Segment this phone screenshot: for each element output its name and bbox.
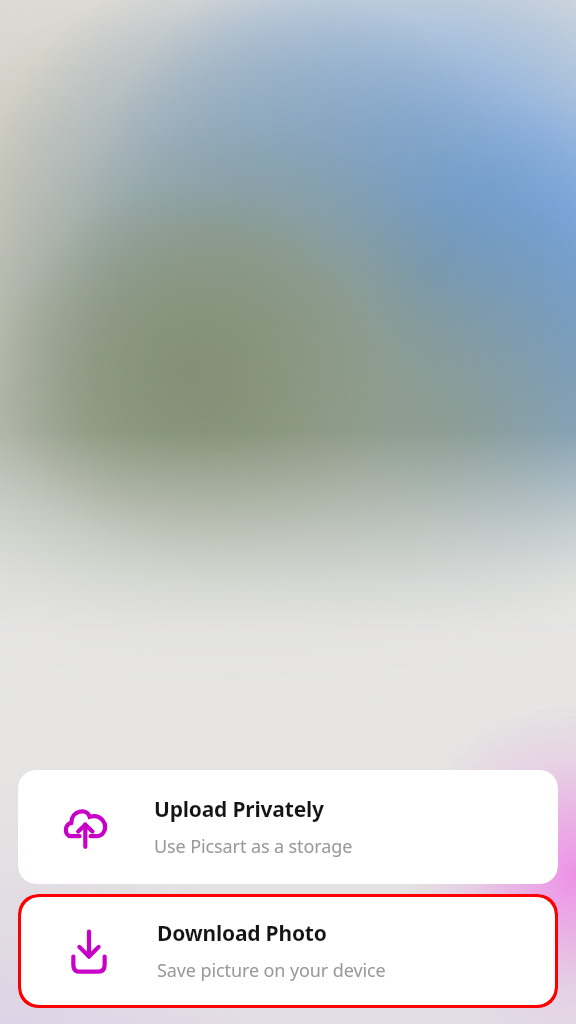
- staticText: Use Picsart as a storage: [154, 834, 353, 859]
- staticText: Save picture on your device: [157, 958, 386, 983]
- button[interactable]: Download photo: [21, 897, 555, 1005]
- button[interactable]: Upload privately: [18, 770, 558, 884]
- staticText: Upload Privately: [154, 795, 324, 824]
- staticText: Download Photo: [157, 919, 327, 948]
